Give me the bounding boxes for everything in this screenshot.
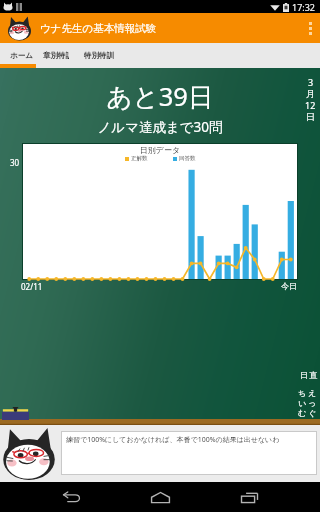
staticText: 回答数 (179, 155, 196, 162)
staticText: ぐ (308, 408, 317, 418)
button[interactable]: Recents (231, 482, 267, 512)
staticText: 30 (10, 157, 20, 168)
staticText: 練習で100%にしておかなければ、本番で100%の結果は出せないわ (66, 435, 280, 445)
staticText: 今日 (281, 281, 297, 291)
button[interactable]: 特別特訓 (69, 43, 128, 68)
button[interactable]: Back (53, 482, 89, 512)
staticText: む (298, 408, 307, 418)
staticText: 日 (306, 111, 315, 122)
button[interactable]: App logo (6, 15, 32, 41)
button[interactable]: ホーム (0, 43, 43, 68)
staticText: 正解数 (131, 155, 148, 162)
button[interactable]: 練習で100%にしておかなければ、本番で100%の結果は出せないわ (61, 431, 317, 475)
staticText: 月 (306, 88, 315, 99)
staticText: 17:32 (292, 1, 316, 13)
staticText: 直 (309, 370, 317, 380)
staticText: 02/11 (21, 281, 43, 292)
staticText: あと39日 (0, 79, 320, 114)
staticText: 日 (300, 370, 308, 380)
staticText: 3 (308, 76, 314, 88)
button[interactable]: 章別特訓 (43, 43, 69, 68)
staticText: ノルマ達成まで30問 (0, 118, 320, 136)
staticText: い (298, 398, 307, 408)
staticText: え (308, 388, 317, 398)
staticText: ホーム (10, 51, 33, 60)
button[interactable]: Home (142, 482, 178, 512)
staticText: 章別特訓 (43, 51, 69, 60)
staticText: 日別データ (23, 145, 297, 155)
button[interactable]: More options (300, 13, 320, 43)
staticText: ち (298, 388, 307, 398)
staticText: 特別特訓 (84, 51, 114, 60)
staticText: 12 (305, 99, 316, 111)
staticText: っ (308, 398, 317, 408)
staticText: ウナ先生の基本情報試験 (40, 22, 157, 35)
